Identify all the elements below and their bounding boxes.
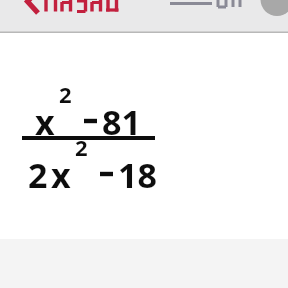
button[interactable]: Назад [24, 0, 124, 16]
button[interactable]: Account [255, 0, 288, 16]
